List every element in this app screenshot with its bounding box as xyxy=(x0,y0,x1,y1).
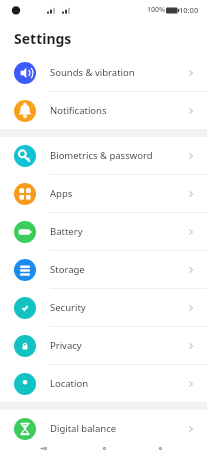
button[interactable]: Recent apps xyxy=(147,447,181,450)
staticText: Sounds & vibration xyxy=(50,66,185,79)
staticText: Settings xyxy=(14,29,72,48)
staticText: 10:00 xyxy=(179,5,199,15)
button[interactable]: Biometrics & password xyxy=(0,137,207,174)
staticText: Biometrics & password xyxy=(50,149,185,162)
button[interactable]: Storage xyxy=(0,251,207,288)
staticText: Security xyxy=(50,301,185,314)
staticText: Notifications xyxy=(50,104,185,117)
button[interactable]: Battery xyxy=(0,213,207,250)
button[interactable]: Apps xyxy=(0,175,207,212)
button[interactable]: Security xyxy=(0,289,207,326)
staticText: Apps xyxy=(50,187,185,200)
staticText: Battery xyxy=(50,225,185,238)
button[interactable]: Notifications xyxy=(0,92,207,129)
staticText: Digital balance xyxy=(50,422,185,435)
button[interactable]: Sounds & vibration xyxy=(0,54,207,91)
staticText: 100% xyxy=(147,5,165,15)
staticText: Privacy xyxy=(50,339,185,352)
button[interactable]: Back xyxy=(26,447,60,450)
button[interactable]: Location xyxy=(0,365,207,402)
button[interactable]: Digital balance xyxy=(0,410,207,447)
button[interactable]: Home xyxy=(87,447,121,450)
button[interactable]: Privacy xyxy=(0,327,207,364)
staticText: Location xyxy=(50,377,185,390)
staticText: Storage xyxy=(50,263,185,276)
